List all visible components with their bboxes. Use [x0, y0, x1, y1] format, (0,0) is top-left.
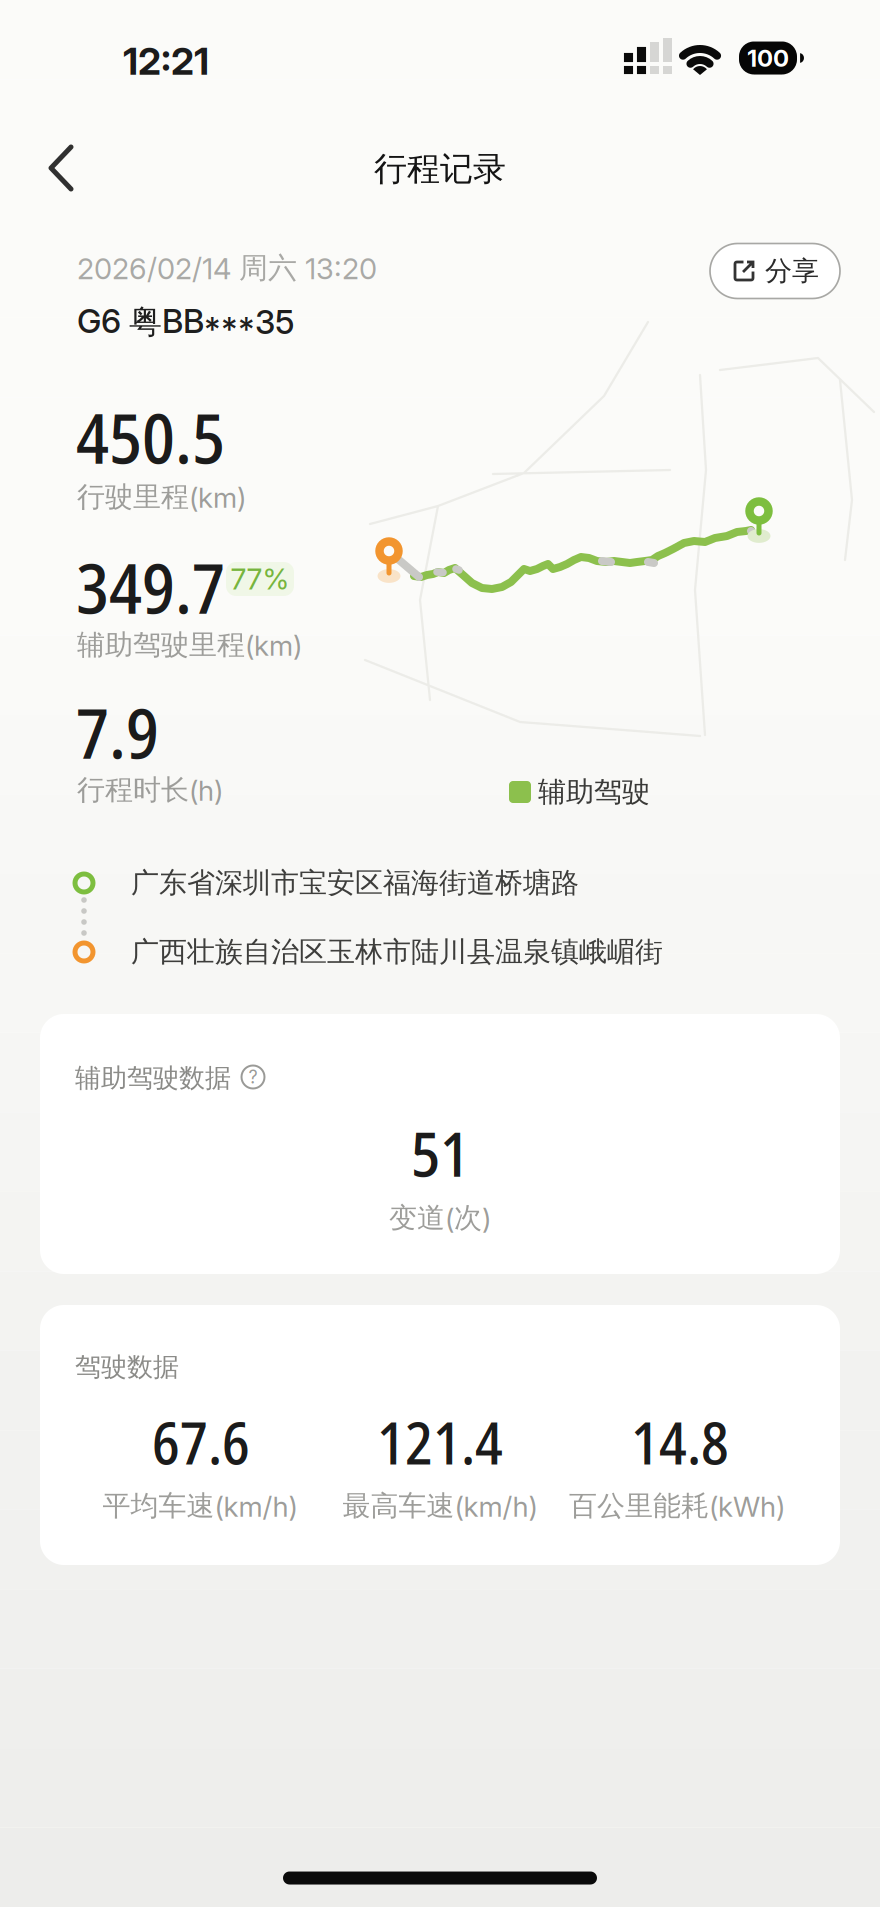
staticText: 2026/02/14 周六 13:20	[77, 250, 377, 286]
staticText: 12:21	[123, 38, 209, 84]
staticText: 辅助驾驶数据	[75, 1062, 231, 1094]
staticText: 14.8	[631, 1402, 729, 1481]
staticText: 驾驶数据	[75, 1351, 179, 1383]
staticText: 121.4	[377, 1402, 503, 1481]
staticText: 行程时长(h)	[77, 772, 223, 808]
button[interactable]: ?	[236, 1060, 270, 1094]
button[interactable]	[40, 141, 92, 195]
staticText: 51	[411, 1111, 469, 1195]
staticText: 分享	[765, 254, 819, 288]
staticText: 广东省深圳市宝安区福海街道桥塘路	[131, 865, 579, 901]
staticText: 行程记录	[374, 148, 506, 190]
staticText: 辅助驾驶	[538, 774, 650, 810]
staticText: 最高车速(km/h)	[342, 1488, 537, 1524]
staticText: 变道(次)	[389, 1200, 491, 1236]
staticText: 450.5	[76, 390, 225, 484]
staticText: ***	[204, 309, 255, 349]
staticText: 100	[747, 43, 789, 72]
staticText: 349.7	[76, 540, 225, 634]
staticText: 35	[255, 302, 295, 342]
staticText: G6 粤BB	[77, 301, 204, 343]
staticText: 行驶里程(km)	[77, 479, 246, 515]
staticText: 77%	[230, 561, 289, 597]
staticText: 辅助驾驶里程(km)	[77, 627, 302, 663]
staticText: 平均车速(km/h)	[102, 1488, 297, 1524]
staticText: 百公里能耗(kWh)	[569, 1488, 785, 1524]
staticText: 7.9	[76, 685, 159, 779]
staticText: ?	[248, 1066, 257, 1088]
staticText: 广西壮族自治区玉林市陆川县温泉镇峨嵋街	[131, 934, 663, 970]
button[interactable]: 分享	[710, 243, 840, 298]
staticText: 67.6	[152, 1402, 250, 1481]
